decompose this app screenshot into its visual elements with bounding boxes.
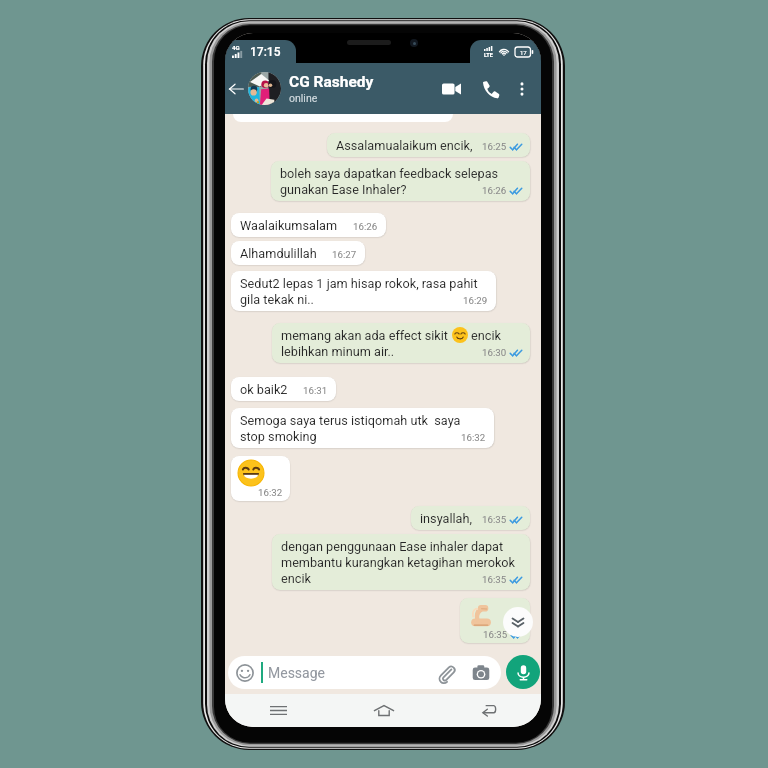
- button[interactable]: boleh saya dapatkan feedback selepas: [271, 161, 530, 201]
- staticText: 16:30: [482, 347, 507, 358]
- button[interactable]: 16:35: [460, 598, 530, 643]
- button[interactable]: Voice call: [475, 74, 505, 104]
- button[interactable]: Home: [331, 694, 436, 727]
- button[interactable]: Recent apps: [225, 694, 331, 727]
- staticText: CG Rashedy: [289, 73, 374, 91]
- button[interactable]: More options: [509, 76, 535, 102]
- button[interactable]: Alhamdulillah: [231, 241, 365, 265]
- staticText: encik: [281, 570, 311, 586]
- staticText: 17: [520, 49, 527, 56]
- button[interactable]: Back: [225, 78, 247, 100]
- staticText: Assalamualaikum encik,: [336, 137, 473, 153]
- staticText: 16:31: [303, 385, 328, 396]
- staticText: 16:35: [483, 629, 508, 640]
- staticText: online: [289, 92, 318, 104]
- button[interactable]: Back: [436, 694, 541, 727]
- staticText: encik: [471, 327, 501, 343]
- staticText: membantu kurangkan ketagihan merokok: [281, 554, 515, 570]
- button[interactable]: memang akan ada effect sikit: [272, 323, 530, 363]
- staticText: 17:15: [250, 45, 281, 59]
- staticText: 16:35: [482, 514, 507, 525]
- staticText: 16:27: [332, 249, 357, 260]
- staticText: 16:32: [461, 432, 486, 443]
- staticText: 16:26: [482, 185, 507, 196]
- staticText: insyallah,: [420, 510, 473, 526]
- staticText: 16:25: [482, 141, 507, 152]
- staticText: stop smoking: [240, 428, 317, 444]
- button[interactable]: Sedut2 lepas 1 jam hisap rokok, rasa pah…: [231, 271, 496, 311]
- staticText: 16:32: [258, 487, 283, 498]
- staticText: gunakan Ease Inhaler?: [280, 181, 407, 197]
- staticText: memang akan ada effect sikit: [281, 327, 449, 343]
- staticText: 16:26: [353, 221, 378, 232]
- button[interactable]: ok baik2: [231, 377, 336, 401]
- button[interactable]: insyallah,: [411, 506, 530, 530]
- button[interactable]: Assalamualaikum encik,: [327, 133, 530, 157]
- staticText: 4G: [232, 44, 240, 51]
- staticText: Sedut2 lepas 1 jam hisap rokok, rasa pah…: [240, 275, 478, 291]
- button[interactable]: Profile photo: [248, 72, 281, 105]
- staticText: ok baik2: [240, 381, 288, 397]
- staticText: 16:29: [463, 295, 488, 306]
- staticText: gila tekak ni..: [240, 291, 314, 307]
- button[interactable]: Scroll to bottom: [503, 607, 533, 637]
- button[interactable]: 16:32: [231, 456, 290, 501]
- staticText: Semoga saya terus istiqomah utk saya: [240, 412, 461, 428]
- button[interactable]: Record voice message: [506, 655, 540, 689]
- staticText: LTE: [484, 52, 493, 58]
- staticText: Alhamdulillah: [240, 245, 317, 261]
- button[interactable]: Message: [228, 656, 501, 689]
- staticText: lebihkan minum air..: [281, 343, 395, 359]
- staticText: dengan penggunaan Ease inhaler dapat: [281, 538, 504, 554]
- button[interactable]: dengan penggunaan Ease inhaler dapat: [272, 534, 530, 590]
- button[interactable]: Video call: [436, 74, 466, 104]
- staticText: 16:35: [482, 574, 507, 585]
- button[interactable]: Semoga saya terus istiqomah utk saya: [231, 408, 494, 448]
- button[interactable]: Waalaikumsalam: [231, 213, 386, 237]
- staticText: Message: [268, 665, 325, 681]
- staticText: Waalaikumsalam: [240, 217, 338, 233]
- staticText: boleh saya dapatkan feedback selepas: [280, 165, 499, 181]
